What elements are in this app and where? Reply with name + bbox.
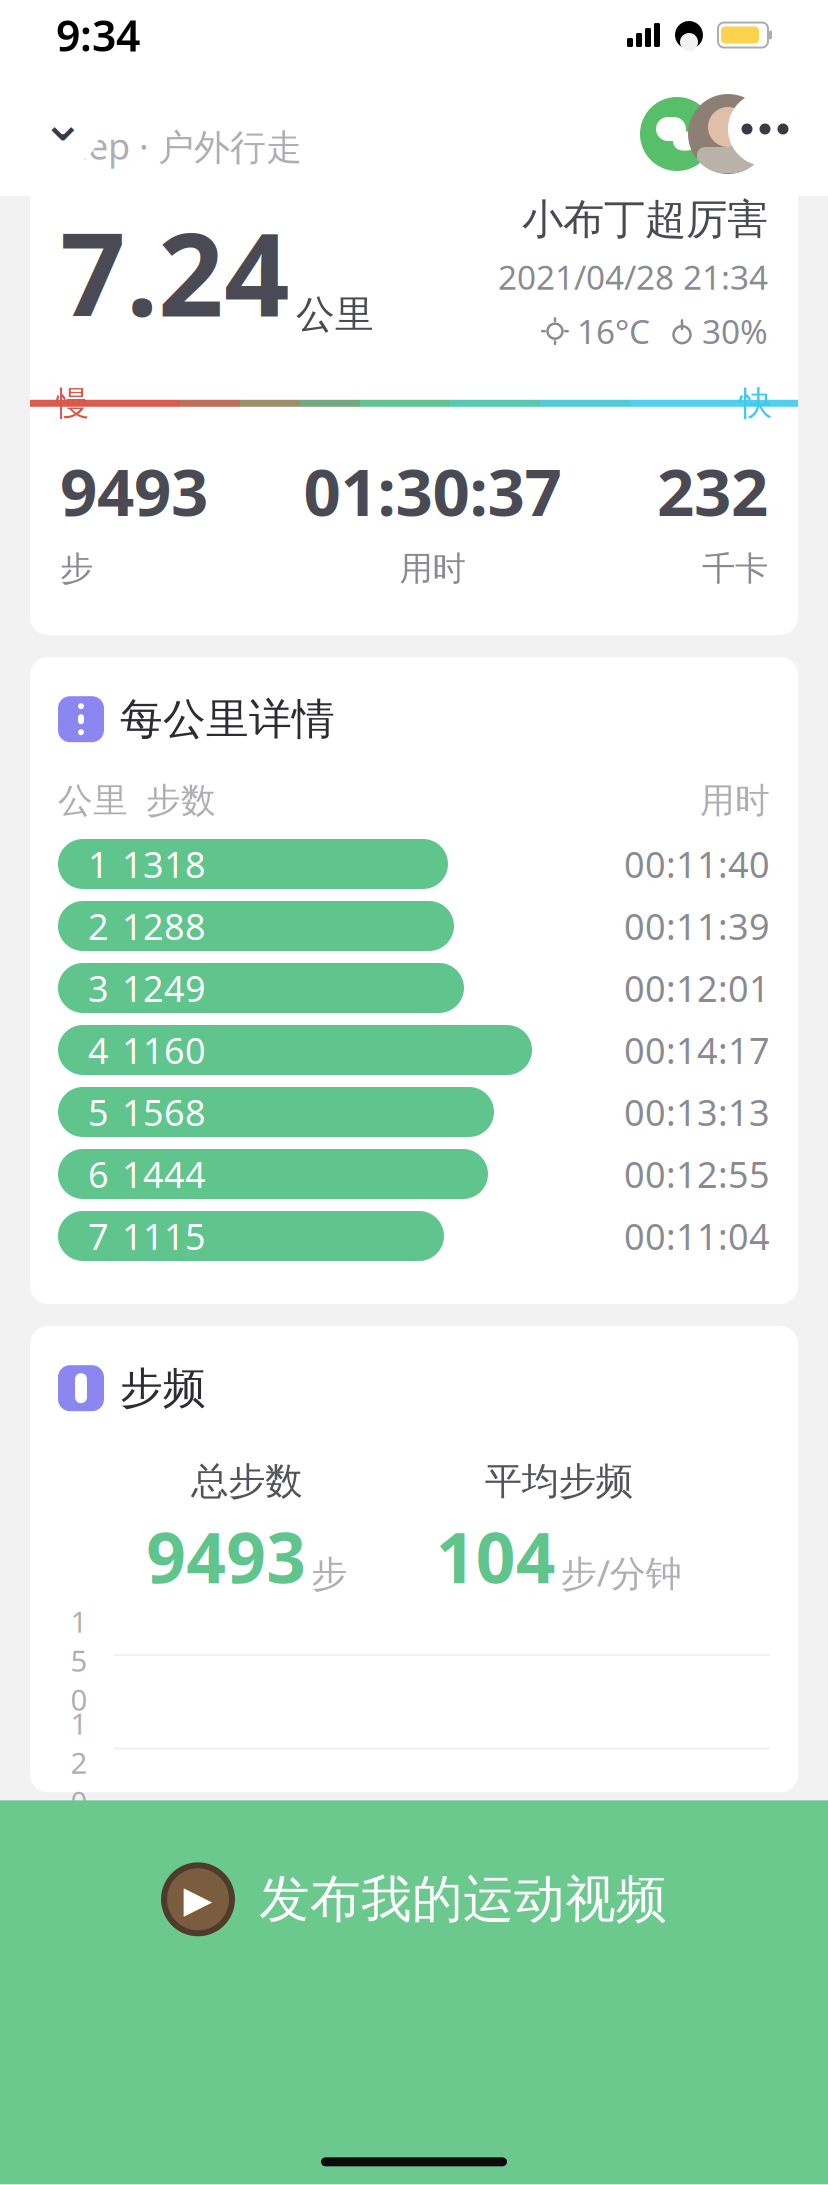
staticText: 步 [60,548,93,589]
button[interactable]: Collapse [26,92,100,166]
staticText: 00:11:39 [624,902,770,950]
staticText: 1568 [122,1088,206,1136]
staticText: 用时 [399,548,465,589]
staticText: 总步数 [191,1458,302,1504]
button[interactable]: More options [728,92,802,166]
staticText: 6 [88,1150,109,1198]
staticText: 1318 [122,840,206,888]
staticText: 1 [88,840,109,888]
staticText: …ep · 户外行走 [60,122,302,170]
staticText: 3 [88,964,109,1012]
staticText: 步频 [120,1362,206,1414]
staticText: 30% [702,309,768,353]
staticText: 1249 [122,964,206,1012]
staticText: 步 [311,1552,347,1596]
staticText: 7.24 [60,196,290,348]
staticText: 104 [436,1510,556,1602]
staticText: 千卡 [702,548,768,589]
staticText: 2 [88,902,109,950]
staticText: 01:30:37 [303,447,561,534]
staticText: 公里 [58,779,128,822]
staticText: 00:13:13 [624,1088,770,1136]
staticText: 慢 [56,383,89,424]
button[interactable]: 发布我的运动视频 [0,1800,828,2184]
staticText: 小布丁超厉害 [522,194,768,245]
staticText: 00:12:55 [624,1150,770,1198]
staticText: 00:11:40 [624,840,770,888]
staticText: ⌄ [40,92,85,152]
staticText: 9493 [146,1510,306,1602]
staticText: 快 [739,383,772,424]
staticText: 232 [657,447,768,534]
staticText: 16°C [577,309,650,353]
staticText: 7 [88,1212,109,1260]
staticText: 用时 [700,779,770,822]
staticText: 2021/04/28 21:34 [498,255,768,299]
staticText: 1160 [122,1026,206,1074]
staticText: 步数 [146,779,216,822]
staticText: 00:14:17 [624,1026,770,1074]
staticText: 平均步频 [485,1458,633,1504]
staticText: 公里 [296,291,374,338]
staticText: ▶ [183,1878,212,1920]
staticText: 9493 [60,447,208,534]
staticText: 5 [88,1088,109,1136]
staticText: 步/分钟 [561,1548,682,1596]
staticText: 1288 [122,902,206,950]
staticText: 150 [70,1602,87,1719]
staticText: 120 [70,1704,87,1821]
staticText: 00:11:04 [624,1212,770,1260]
staticText: 1115 [122,1212,206,1260]
staticText: 1444 [122,1150,206,1198]
staticText: 发布我的运动视频 [259,1868,667,1930]
staticText: 每公里详情 [120,693,335,745]
staticText: 00:12:01 [624,964,770,1012]
staticText: 4 [88,1026,109,1074]
